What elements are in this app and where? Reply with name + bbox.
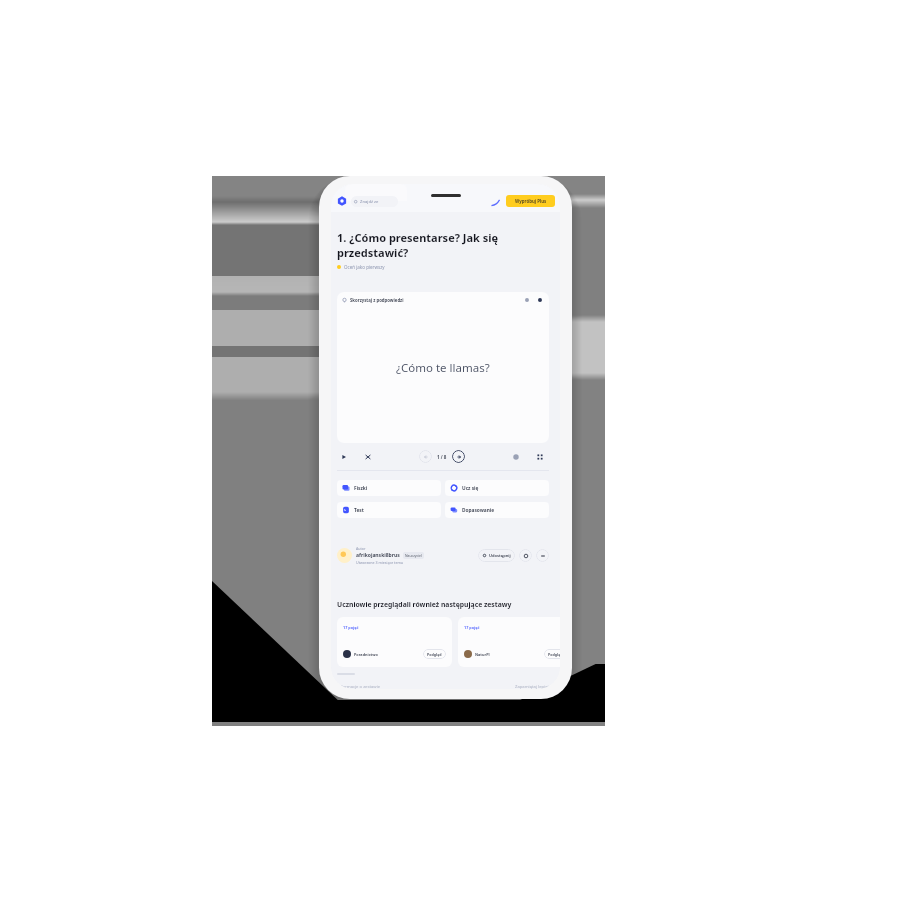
staticText: Zapamiętaj lepiej — [515, 684, 549, 689]
button[interactable]: Previous — [419, 450, 432, 463]
button[interactable]: Udostępnij — [478, 549, 515, 562]
button[interactable]: Next — [452, 450, 465, 463]
button[interactable]: Settings — [512, 453, 520, 461]
staticText: Uczniowie przeglądali również następując… — [337, 600, 512, 609]
button[interactable]: 17 pojęć — [458, 617, 560, 667]
staticText: Nauczyciel — [405, 553, 422, 558]
button[interactable]: Shuffle — [364, 453, 372, 461]
button[interactable]: Fiszki — [337, 480, 441, 496]
staticText: Znajdź ze — [360, 199, 379, 205]
staticText: Podgląd — [427, 652, 442, 657]
button[interactable]: Fullscreen — [536, 453, 544, 461]
button[interactable]: Star — [537, 297, 543, 303]
staticText: afrikojanski8brus — [356, 552, 400, 559]
staticText: Test — [354, 507, 364, 514]
button[interactable]: 17 pojęć — [337, 617, 452, 667]
staticText: 1 / 8 — [437, 454, 447, 460]
button[interactable]: Ucz się — [445, 480, 549, 496]
button[interactable]: Dopasowanie — [445, 502, 549, 518]
staticText: Informacje o zestawie — [337, 684, 381, 689]
staticText: 17 pojęć — [464, 625, 480, 630]
staticText: ¿Cómo te llamas? — [396, 360, 490, 376]
button[interactable]: More options — [536, 549, 549, 562]
staticText: Wypróbuj Plus — [515, 198, 547, 204]
staticText: Ucz się — [462, 485, 479, 492]
staticText: Skorzystaj z podpowiedzi — [350, 297, 404, 303]
staticText: Utworzone 3 miesiące temu — [356, 560, 404, 565]
button[interactable]: Podgląd — [544, 649, 560, 659]
button[interactable]: Save — [519, 549, 532, 562]
staticText: 1. ¿Cómo presentarse? Jak się przedstawi… — [337, 230, 549, 260]
button[interactable]: Test — [337, 502, 441, 518]
button[interactable]: Znajdź ze — [351, 196, 398, 207]
button[interactable]: Quizlet — [337, 196, 347, 206]
staticText: Fiszki — [354, 485, 368, 492]
staticText: Dopasowanie — [462, 507, 495, 514]
staticText: 17 pojęć — [343, 625, 359, 630]
staticText: Oceń jako pierwszy — [344, 264, 385, 270]
button[interactable]: Play — [340, 453, 348, 461]
staticText: Autor — [356, 546, 366, 551]
staticText: Podgląd — [548, 652, 560, 657]
button[interactable]: Audio — [524, 297, 530, 303]
button[interactable]: Podgląd — [423, 649, 446, 659]
staticText: Poradnictwo — [354, 652, 378, 657]
staticText: Udostępnij — [489, 553, 511, 558]
button[interactable]: Wypróbuj Plus — [506, 195, 555, 207]
staticText: NaturPl — [475, 652, 490, 657]
